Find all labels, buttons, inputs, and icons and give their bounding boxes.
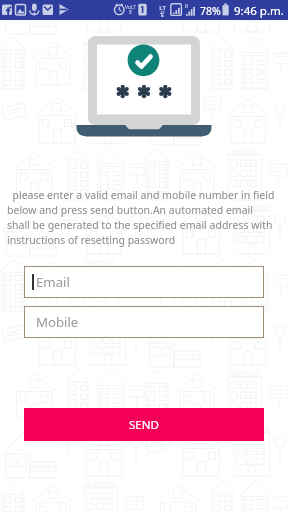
staticText: Email bbox=[36, 273, 70, 291]
staticText: 9:46 p.m. bbox=[234, 3, 284, 19]
button[interactable]: SEND bbox=[24, 408, 264, 441]
staticText: VoLTE bbox=[125, 4, 136, 15]
button[interactable]: Email bbox=[24, 266, 264, 298]
staticText: LTE bbox=[158, 4, 167, 19]
staticText: R bbox=[185, 3, 189, 10]
staticText: SEND bbox=[129, 417, 159, 433]
staticText: 78% bbox=[200, 4, 221, 18]
staticText: 4T bbox=[158, 10, 167, 15]
staticText: please enter a valid email and mobile nu… bbox=[7, 188, 287, 247]
staticText: Mobile bbox=[36, 313, 79, 331]
button[interactable]: Mobile bbox=[24, 306, 264, 338]
other: Status bar bbox=[0, 0, 288, 20]
